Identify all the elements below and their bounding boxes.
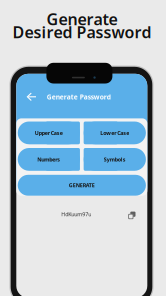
staticText: HdKuum97u: [61, 211, 91, 218]
button[interactable]: Lower Case: [84, 121, 146, 144]
staticText: Numbers: [37, 156, 60, 163]
staticText: GENERATE: [69, 182, 95, 189]
button[interactable]: GENERATE: [18, 175, 146, 196]
button[interactable]: Symbols: [84, 148, 146, 171]
button[interactable]: Copy password: [125, 209, 136, 220]
staticText: Generate: [46, 8, 117, 30]
staticText: Symbols: [104, 156, 126, 163]
staticText: Desired Password: [12, 21, 151, 43]
staticText: Lower Case: [100, 129, 129, 136]
button[interactable]: Back: [25, 90, 38, 103]
staticText: Generate Password: [47, 92, 111, 101]
button[interactable]: Numbers: [18, 148, 80, 171]
staticText: Upper Case: [35, 129, 63, 136]
button[interactable]: Upper Case: [18, 121, 80, 144]
